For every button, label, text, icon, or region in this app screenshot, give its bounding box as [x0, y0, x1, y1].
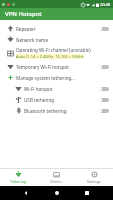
button[interactable]: Toggle — [97, 107, 110, 114]
button[interactable]: Toggle — [97, 25, 110, 32]
staticText: Wi-Fi hotspot — [24, 86, 53, 92]
staticText: Repeater — [16, 26, 36, 32]
staticText: Tethering — [10, 179, 27, 184]
button[interactable]: Repeater — [0, 23, 113, 34]
button[interactable]: Clients — [37, 169, 75, 186]
staticText: Temporary Wi-Fi hotspot — [16, 64, 69, 70]
button[interactable]: Toggle — [97, 63, 110, 70]
button[interactable]: Toggle — [97, 85, 110, 92]
staticText: Bluetooth tethering — [24, 108, 67, 114]
button[interactable]: Tethering — [0, 169, 37, 186]
staticText: VPN Hotspot — [5, 10, 42, 18]
staticText: Network name — [16, 37, 48, 43]
button[interactable]: Bluetooth tethering — [0, 105, 113, 116]
button[interactable]: Home — [52, 188, 62, 198]
staticText: Auto (1-14 = 2.4GHz, 15-165 = 5GHz) — [16, 54, 84, 59]
staticText: 20:48 — [100, 2, 111, 7]
button[interactable]: Wi-Fi hotspot — [0, 83, 113, 94]
button[interactable]: Back — [21, 188, 31, 198]
staticText: Manage system tethering… — [16, 75, 75, 81]
staticText: Operating Wi-Fi channel (unstable) — [16, 47, 91, 53]
button[interactable]: Network name — [0, 34, 113, 45]
button[interactable]: Recents — [82, 188, 92, 198]
staticText: Clients — [50, 179, 62, 184]
button[interactable]: Operating Wi-Fi channel (unstable) — [0, 45, 113, 61]
button[interactable]: Manage system tethering… — [0, 72, 113, 83]
staticText: Settings — [87, 179, 101, 184]
button[interactable]: Settings — [75, 169, 113, 186]
button[interactable]: Temporary Wi-Fi hotspot — [0, 61, 113, 72]
button[interactable]: USB tethering — [0, 94, 113, 105]
button[interactable]: Toggle — [97, 96, 110, 103]
staticText: USB tethering — [24, 97, 55, 103]
